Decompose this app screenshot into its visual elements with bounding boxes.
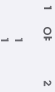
- button[interactable]: Page 1 of 2: [0, 0, 55, 92]
